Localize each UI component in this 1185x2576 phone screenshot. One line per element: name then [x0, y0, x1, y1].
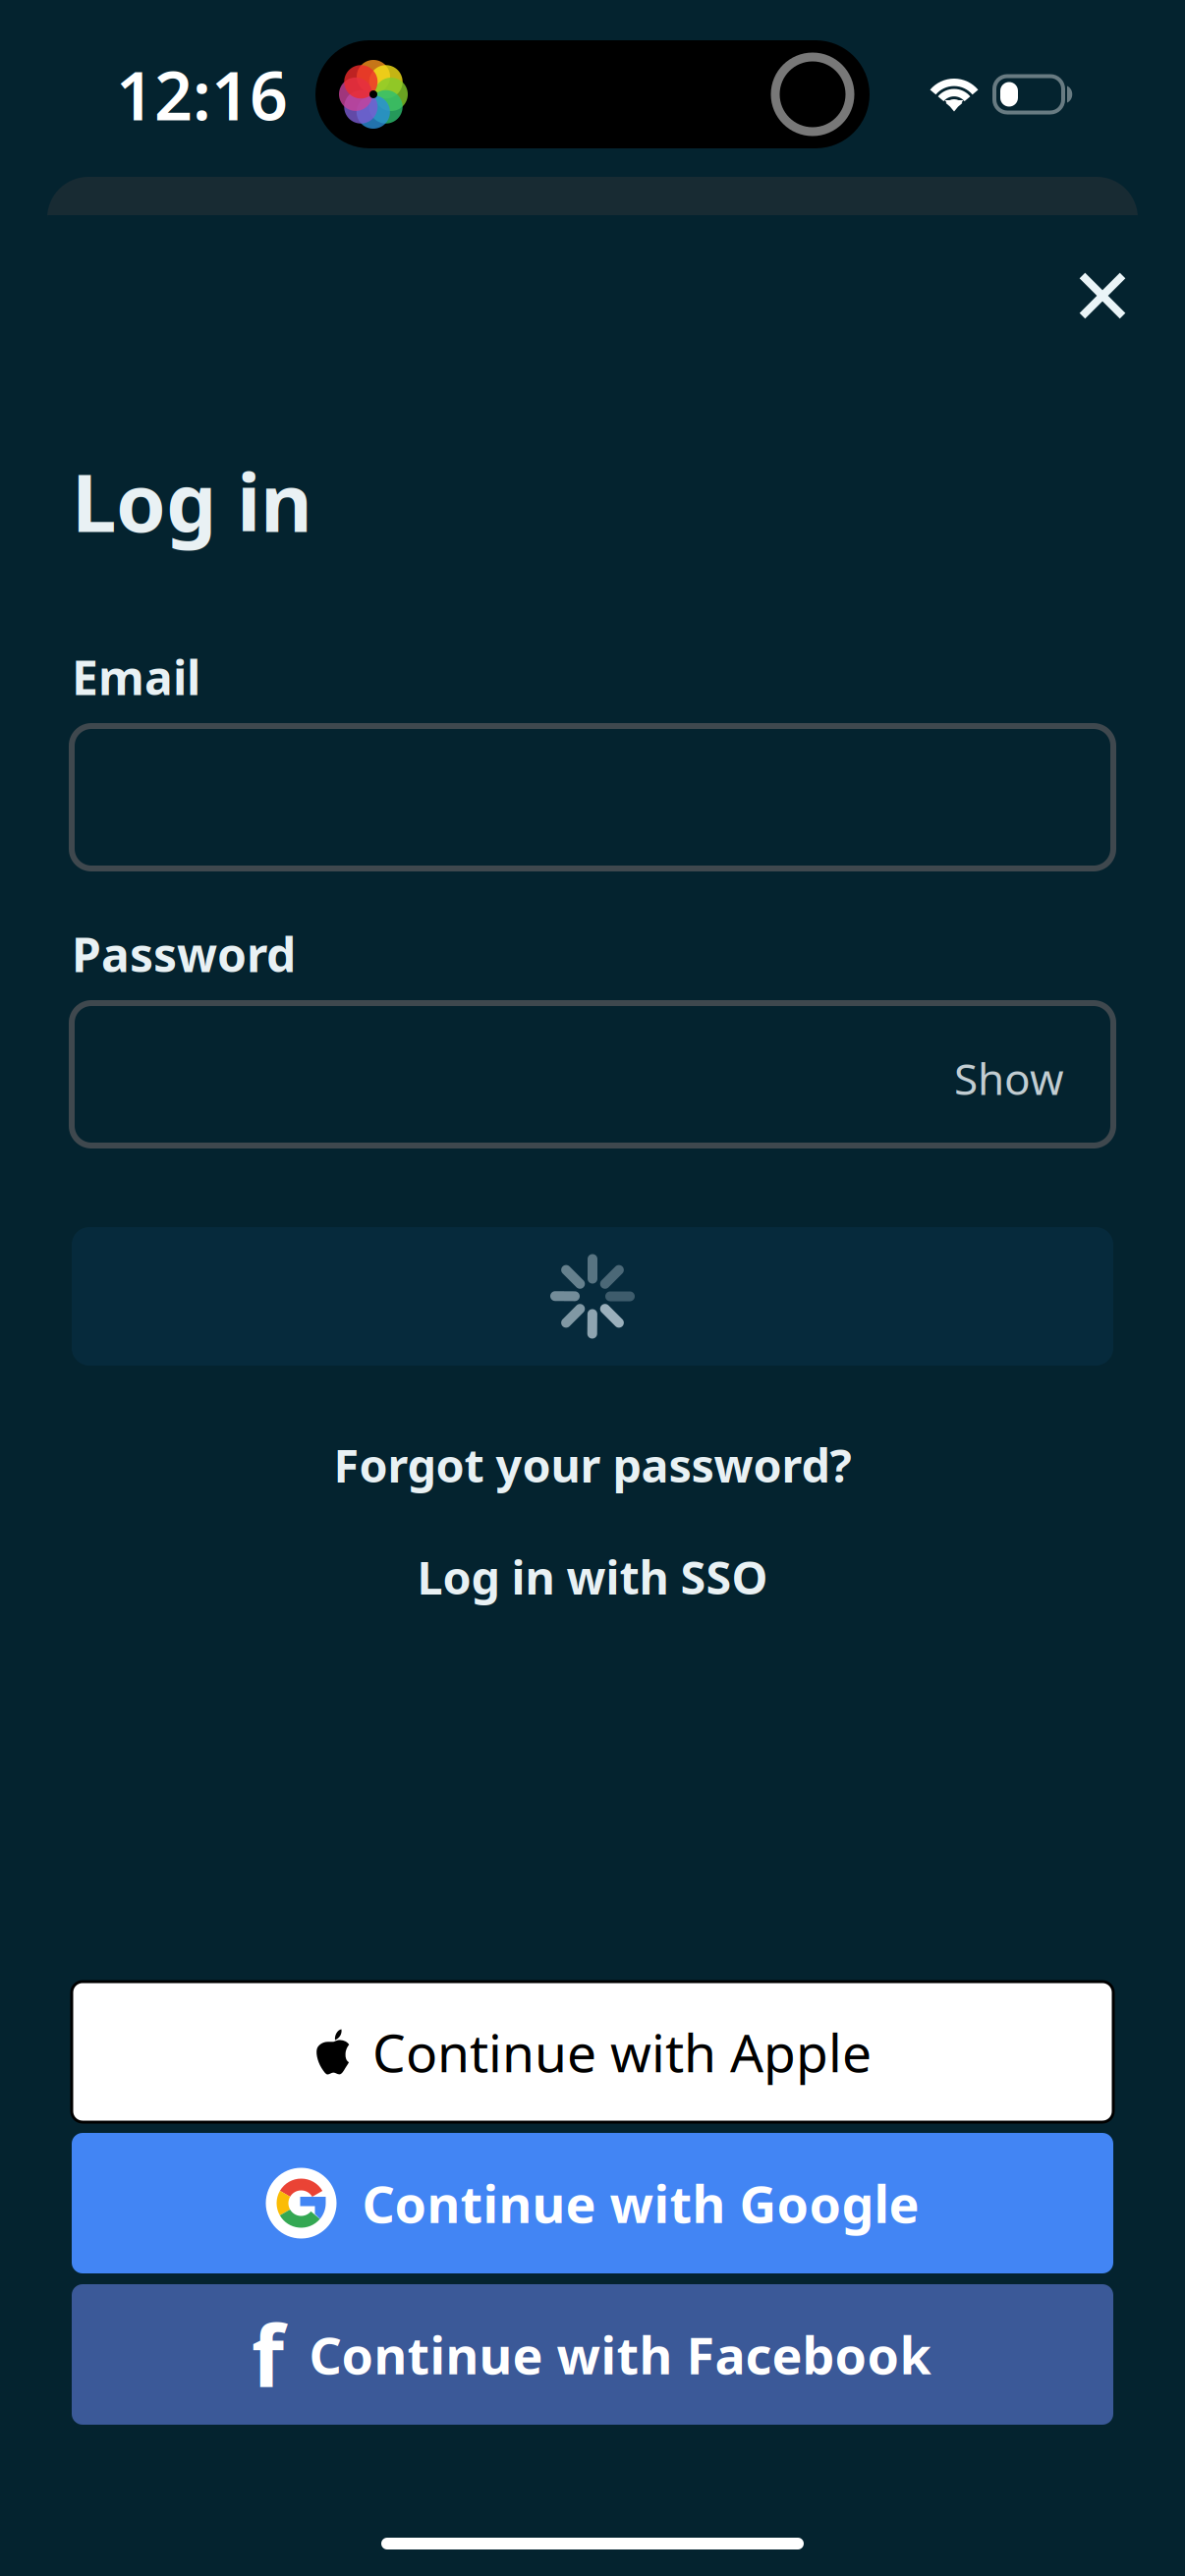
- staticText: Log in with SSO: [417, 1546, 768, 1607]
- button[interactable]: f: [72, 2284, 1113, 2425]
- button[interactable]: Show: [925, 1004, 1094, 1144]
- button[interactable]: [72, 1227, 1113, 1366]
- staticText: 12:16: [116, 50, 288, 139]
- staticText: Email: [72, 646, 200, 708]
- staticText: Continue with Google: [362, 2169, 919, 2237]
- button[interactable]: Continue with Google: [72, 2133, 1113, 2273]
- button[interactable]: Log in with SSO: [0, 1547, 1185, 1606]
- staticText: Show: [954, 1050, 1064, 1107]
- staticText: Continue with Apple: [372, 2017, 872, 2087]
- button[interactable]: Continue with Apple: [72, 1982, 1113, 2122]
- button[interactable]: Close: [1042, 235, 1163, 357]
- staticText: Log in: [72, 448, 312, 554]
- staticText: Password: [72, 923, 296, 985]
- staticText: Forgot your password?: [334, 1434, 851, 1495]
- staticText: f: [252, 2299, 284, 2410]
- button[interactable]: Forgot your password?: [0, 1435, 1185, 1494]
- staticText: Continue with Facebook: [309, 2321, 931, 2388]
